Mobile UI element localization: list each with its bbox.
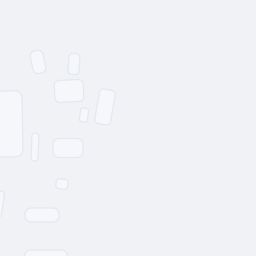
button[interactable]: Card 5	[80, 108, 88, 122]
button[interactable]: Card 10	[0, 191, 3, 217]
button[interactable]: Card 2	[68, 53, 79, 74]
button[interactable]: Card 4	[97, 89, 113, 124]
button[interactable]: Card 11	[25, 208, 59, 222]
button[interactable]: Card 9	[56, 179, 68, 189]
button[interactable]: Card 12	[24, 250, 67, 256]
button[interactable]: Card 3	[54, 80, 83, 102]
button[interactable]: Card 1	[31, 50, 44, 73]
button[interactable]: Card 7	[31, 133, 38, 161]
button[interactable]: Card 8	[53, 138, 83, 157]
